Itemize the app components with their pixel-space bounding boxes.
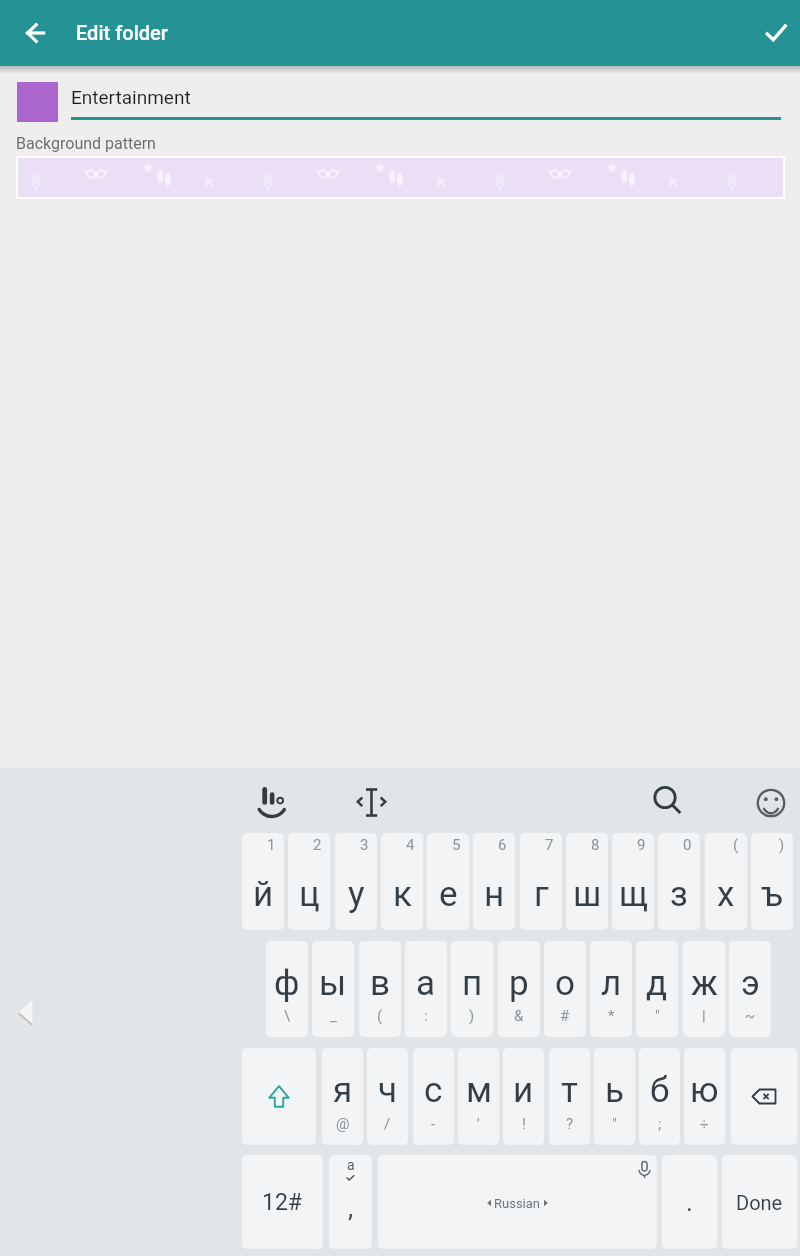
button[interactable]: э bbox=[729, 941, 771, 1037]
button[interactable]: ю bbox=[684, 1048, 725, 1145]
staticText: 6 bbox=[498, 836, 507, 854]
staticText: я bbox=[333, 1070, 353, 1111]
button[interactable]: ф bbox=[266, 941, 308, 1037]
button[interactable]: в bbox=[359, 941, 401, 1037]
button[interactable] bbox=[242, 1048, 316, 1145]
staticText: ы bbox=[319, 963, 347, 1004]
button[interactable]: 1 bbox=[242, 833, 284, 930]
button[interactable]: Done bbox=[722, 1155, 797, 1249]
staticText: " bbox=[612, 1115, 617, 1133]
staticText: г bbox=[534, 874, 549, 915]
staticText: " bbox=[655, 1007, 660, 1025]
button[interactable] bbox=[12, 9, 60, 57]
staticText: 2 bbox=[313, 836, 322, 854]
staticText: ' bbox=[477, 1115, 480, 1133]
staticText: Russian bbox=[494, 1196, 541, 1211]
staticText: ~ bbox=[745, 1007, 756, 1025]
staticText: Background pattern bbox=[16, 134, 156, 153]
button[interactable]: 12# bbox=[242, 1155, 323, 1249]
staticText: ? bbox=[566, 1115, 574, 1133]
staticText: е bbox=[439, 874, 458, 915]
staticText: ц bbox=[299, 874, 320, 915]
button[interactable]: я bbox=[322, 1048, 363, 1145]
staticText: а bbox=[416, 963, 436, 1004]
button[interactable] bbox=[348, 778, 396, 826]
button[interactable]: м bbox=[458, 1048, 499, 1145]
button[interactable] bbox=[744, 9, 792, 57]
staticText: ÷ bbox=[700, 1115, 709, 1133]
button[interactable]: и bbox=[503, 1048, 544, 1145]
button[interactable]: 5 bbox=[427, 833, 469, 930]
staticText: й bbox=[253, 874, 274, 915]
button[interactable]: л bbox=[590, 941, 632, 1037]
staticText: ю bbox=[690, 1070, 719, 1111]
button[interactable]: ь bbox=[594, 1048, 635, 1145]
button[interactable] bbox=[731, 1048, 797, 1145]
staticText: @ bbox=[336, 1115, 350, 1133]
button[interactable]: ) bbox=[751, 833, 793, 930]
staticText: к bbox=[393, 874, 412, 915]
button[interactable] bbox=[16, 156, 785, 199]
button[interactable]: с bbox=[413, 1048, 454, 1145]
button[interactable]: р bbox=[498, 941, 540, 1037]
staticText: 9 bbox=[637, 836, 646, 854]
staticText: \ bbox=[284, 1007, 291, 1025]
button[interactable]: Russian bbox=[378, 1155, 657, 1249]
staticText: п bbox=[462, 963, 483, 1004]
button[interactable]: о bbox=[544, 941, 586, 1037]
staticText: ) bbox=[469, 1007, 475, 1025]
button[interactable]: 8 bbox=[566, 833, 608, 930]
button[interactable]: ы bbox=[312, 941, 354, 1037]
staticText: л bbox=[601, 963, 622, 1004]
staticText: a bbox=[347, 1157, 355, 1173]
staticText: 0 bbox=[683, 836, 692, 854]
staticText: ш bbox=[573, 874, 602, 915]
button[interactable]: п bbox=[451, 941, 493, 1037]
button[interactable]: ч bbox=[367, 1048, 408, 1145]
staticText: 8 bbox=[591, 836, 600, 854]
button[interactable]: 9 bbox=[612, 833, 654, 930]
button[interactable]: 4 bbox=[381, 833, 423, 930]
button[interactable]: д bbox=[636, 941, 678, 1037]
staticText: ) bbox=[779, 836, 785, 854]
button[interactable]: 6 bbox=[473, 833, 515, 930]
staticText: м bbox=[466, 1070, 492, 1111]
staticText: ( bbox=[377, 1007, 383, 1025]
staticText: : bbox=[424, 1007, 428, 1025]
staticText: Entertainment bbox=[71, 86, 191, 108]
button[interactable]: ж bbox=[683, 941, 725, 1037]
button[interactable]: т bbox=[549, 1048, 590, 1145]
button[interactable] bbox=[642, 778, 690, 826]
staticText: 1 bbox=[267, 836, 276, 854]
staticText: у bbox=[348, 874, 365, 915]
button[interactable]: 0 bbox=[658, 833, 700, 930]
button[interactable]: 7 bbox=[520, 833, 562, 930]
button[interactable]: а bbox=[405, 941, 447, 1037]
staticText: _ bbox=[330, 1007, 337, 1025]
staticText: д bbox=[646, 963, 668, 1004]
staticText: т bbox=[561, 1070, 578, 1111]
staticText: , bbox=[348, 1193, 354, 1223]
staticText: с bbox=[424, 1070, 443, 1111]
staticText: 4 bbox=[406, 836, 415, 854]
button[interactable]: 2 bbox=[288, 833, 330, 930]
staticText: ъ bbox=[761, 874, 783, 915]
button[interactable]: ( bbox=[705, 833, 747, 930]
staticText: ч bbox=[378, 1070, 398, 1111]
button[interactable]: . bbox=[662, 1155, 717, 1249]
button[interactable]: Entertainment bbox=[70, 80, 782, 120]
staticText: | bbox=[702, 1007, 706, 1025]
button[interactable]: б bbox=[639, 1048, 680, 1145]
button[interactable] bbox=[248, 778, 296, 826]
staticText: 12# bbox=[262, 1189, 303, 1216]
staticText: н bbox=[484, 874, 505, 915]
staticText: ф bbox=[274, 963, 300, 1004]
staticText: 5 bbox=[452, 836, 461, 854]
staticText: * bbox=[608, 1007, 615, 1025]
staticText: & bbox=[514, 1007, 524, 1025]
button[interactable] bbox=[747, 778, 795, 826]
button[interactable]: 3 bbox=[335, 833, 377, 930]
button[interactable]: a bbox=[329, 1155, 372, 1249]
staticText: Edit folder bbox=[76, 21, 168, 44]
